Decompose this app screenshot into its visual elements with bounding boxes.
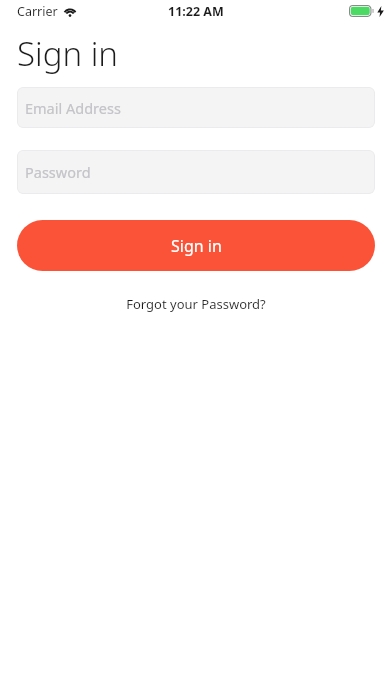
button[interactable]: Forgot your Password? bbox=[116, 292, 276, 316]
staticText: Sign in bbox=[171, 235, 222, 257]
button[interactable]: Email Address bbox=[17, 87, 375, 128]
staticText: Forgot your Password? bbox=[126, 295, 266, 313]
staticText: Email Address bbox=[25, 98, 121, 118]
staticText: Password bbox=[25, 162, 91, 182]
button[interactable]: Password bbox=[17, 150, 375, 194]
staticText: Carrier bbox=[17, 3, 58, 20]
staticText: Sign in bbox=[17, 31, 118, 76]
button[interactable]: Sign in bbox=[17, 220, 375, 271]
staticText: 11:22 AM bbox=[168, 3, 224, 20]
